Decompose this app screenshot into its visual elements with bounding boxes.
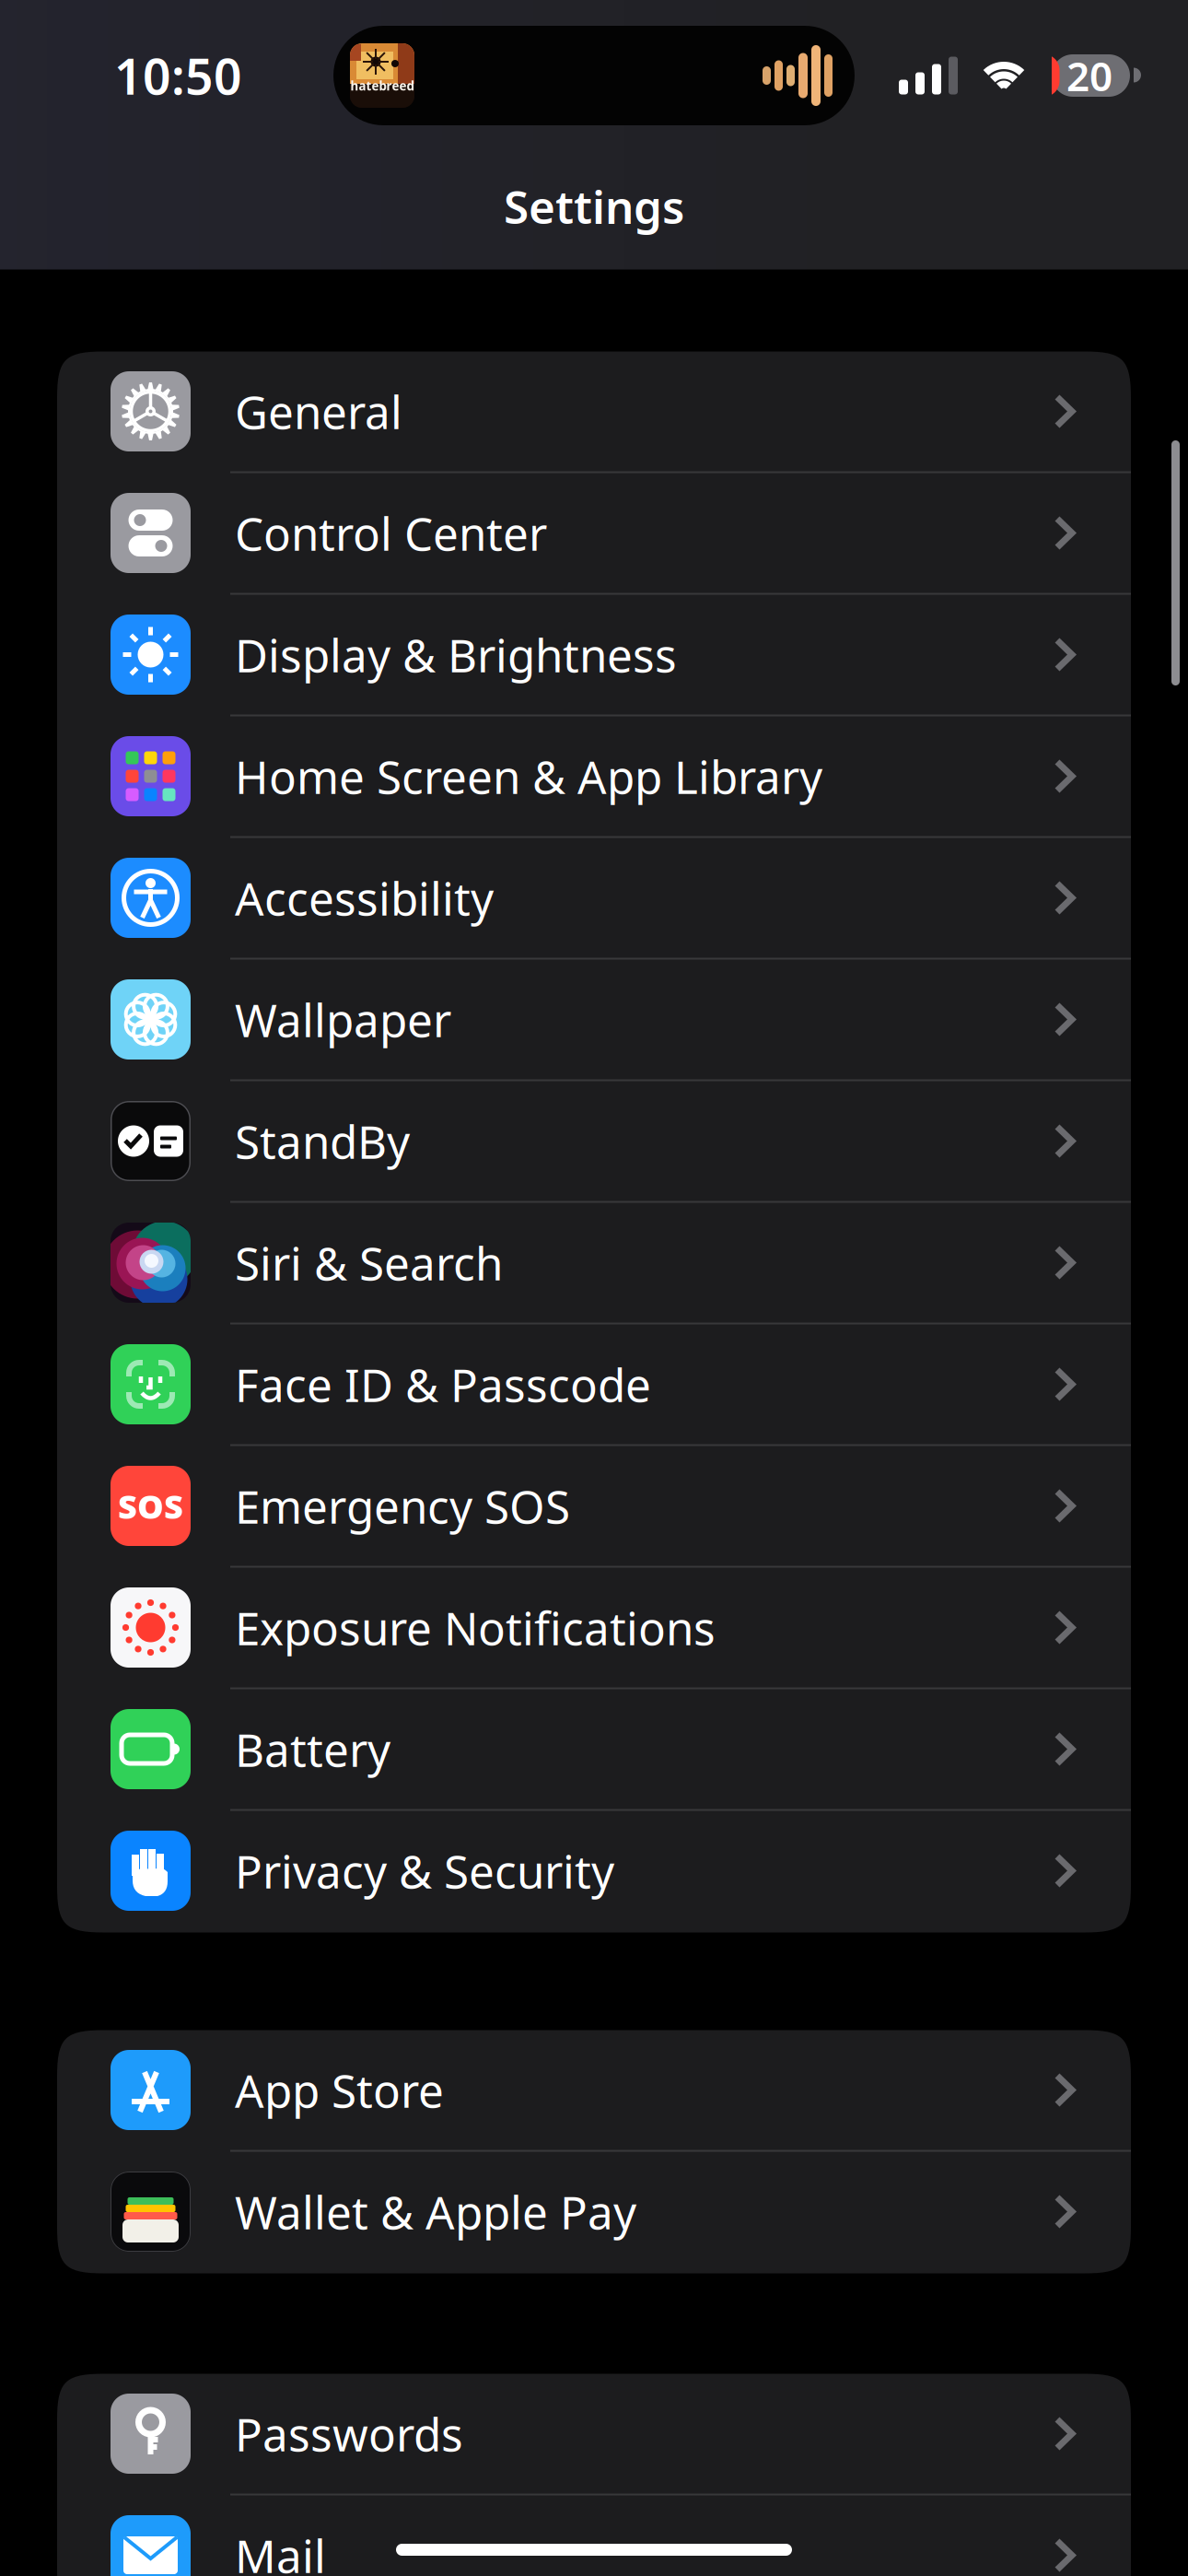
button[interactable]: Display & Brightness [57,595,1131,716]
button[interactable]: Passwords [57,2374,1131,2495]
button[interactable]: Battery [57,1689,1131,1811]
staticText: Settings [504,176,684,236]
button[interactable]: SOS [57,1446,1131,1568]
button[interactable]: Siri & Search [57,1203,1131,1324]
staticText: Face ID & Passcode [235,1354,651,1414]
staticText: Battery [235,1719,390,1779]
staticText: General [235,381,402,442]
staticText: Wallpaper [235,989,451,1050]
staticText: Mail [235,2525,326,2576]
staticText: Control Center [235,503,547,563]
staticText: Siri & Search [235,1233,503,1293]
button[interactable]: Home Screen & App Library [57,716,1131,838]
button[interactable]: Wallpaper [57,960,1131,1081]
staticText: StandBy [235,1111,410,1171]
staticText: SOS [118,1484,183,1528]
staticText: Home Screen & App Library [235,746,822,806]
button[interactable]: App Store [57,2030,1131,2152]
staticText: Privacy & Security [235,1841,614,1901]
staticText: 20 [1066,49,1112,102]
button[interactable]: StandBy [57,1081,1131,1203]
button[interactable]: Mail [57,2495,1131,2576]
button[interactable]: Privacy & Security [57,1811,1131,1932]
staticText: Accessibility [235,868,494,928]
staticText: hatebreed [350,77,414,94]
button[interactable]: Exposure Notifications [57,1568,1131,1689]
button[interactable]: Wallet & Apple Pay [57,2152,1131,2273]
button[interactable]: Control Center [57,473,1131,595]
staticText: Exposure Notifications [235,1597,716,1658]
staticText: Wallet & Apple Pay [235,2181,636,2242]
staticText: Emergency SOS [235,1476,570,1536]
staticText: Passwords [235,2404,463,2464]
button[interactable]: General [57,351,1131,473]
button[interactable]: Accessibility [57,838,1131,960]
button[interactable]: Face ID & Passcode [57,1324,1131,1446]
staticText: App Store [235,2060,444,2120]
staticText: Display & Brightness [235,624,677,685]
staticText: 10:50 [114,43,242,108]
